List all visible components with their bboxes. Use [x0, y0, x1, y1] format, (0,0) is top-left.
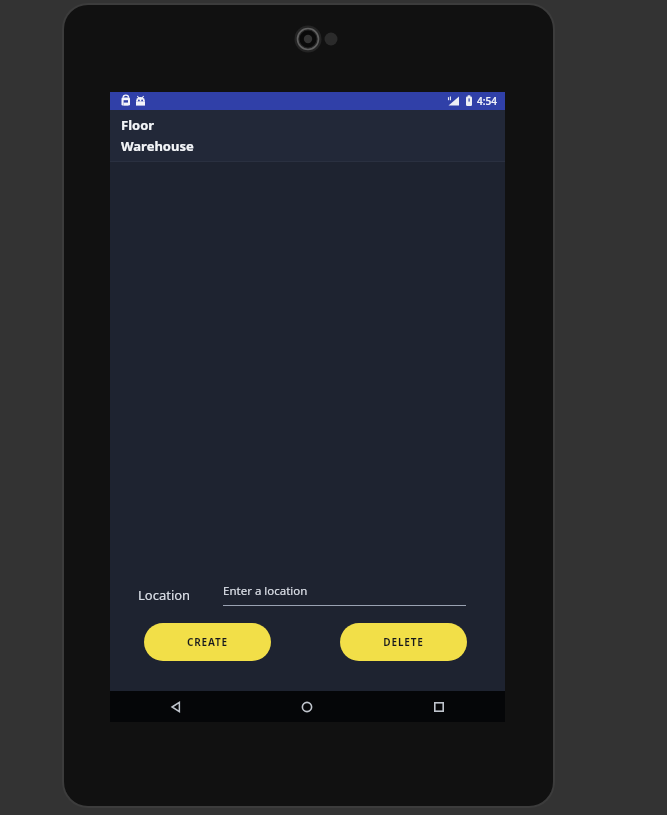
staticText: Warehouse: [121, 137, 194, 155]
staticText: Enter a location: [223, 583, 308, 599]
staticText: Location: [138, 586, 191, 604]
button[interactable]: Recent apps: [373, 691, 505, 722]
staticText: DELETE: [383, 635, 424, 649]
button[interactable]: Back: [110, 691, 241, 722]
button[interactable]: Home: [241, 691, 373, 722]
button[interactable]: Enter a location: [223, 583, 466, 606]
staticText: 4:54: [477, 94, 497, 108]
staticText: CREATE: [187, 635, 228, 649]
button[interactable]: DELETE: [340, 623, 467, 661]
staticText: Floor: [121, 116, 155, 134]
button[interactable]: CREATE: [144, 623, 271, 661]
